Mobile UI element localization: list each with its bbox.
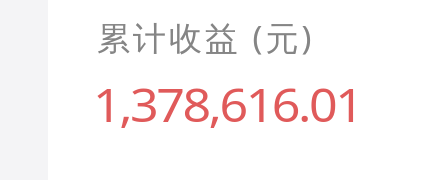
staticText: 1,378,616.01 — [93, 74, 361, 135]
staticText: 累计收益 (元) — [97, 15, 315, 60]
